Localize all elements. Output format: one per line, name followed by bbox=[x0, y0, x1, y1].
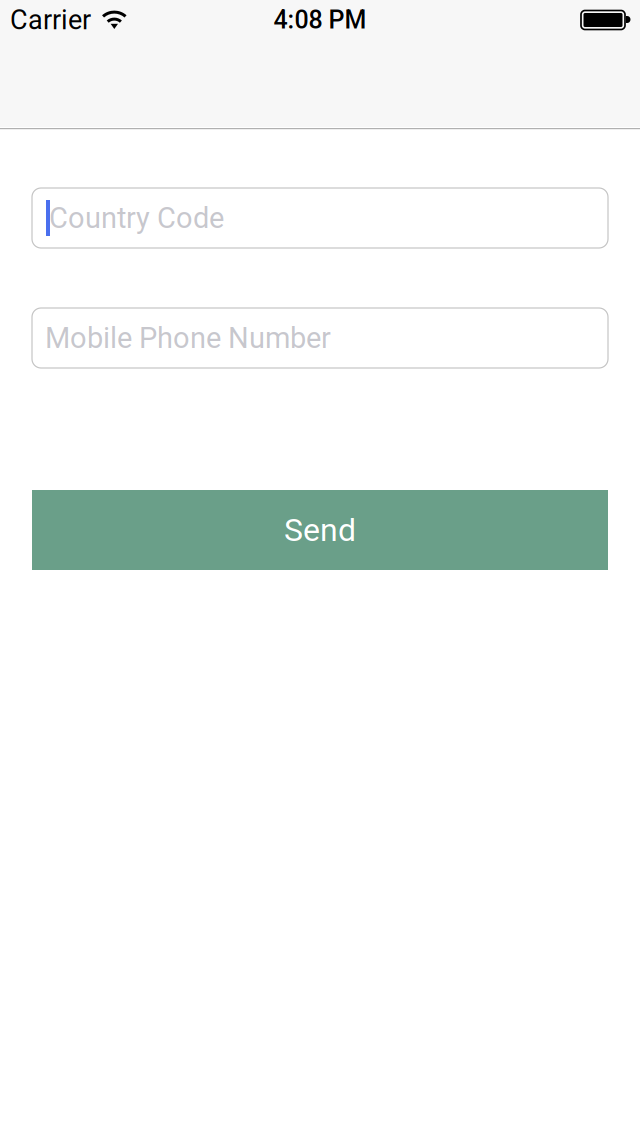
staticText: Carrier bbox=[10, 4, 91, 36]
staticText: Country Code bbox=[49, 201, 224, 235]
staticText: 4:08 PM bbox=[273, 5, 366, 35]
button[interactable]: Send bbox=[32, 490, 608, 570]
button[interactable]: Mobile Phone Number bbox=[32, 308, 608, 368]
button[interactable]: Country Code bbox=[32, 188, 608, 248]
staticText: Mobile Phone Number bbox=[45, 321, 331, 355]
staticText: Send bbox=[284, 511, 356, 549]
